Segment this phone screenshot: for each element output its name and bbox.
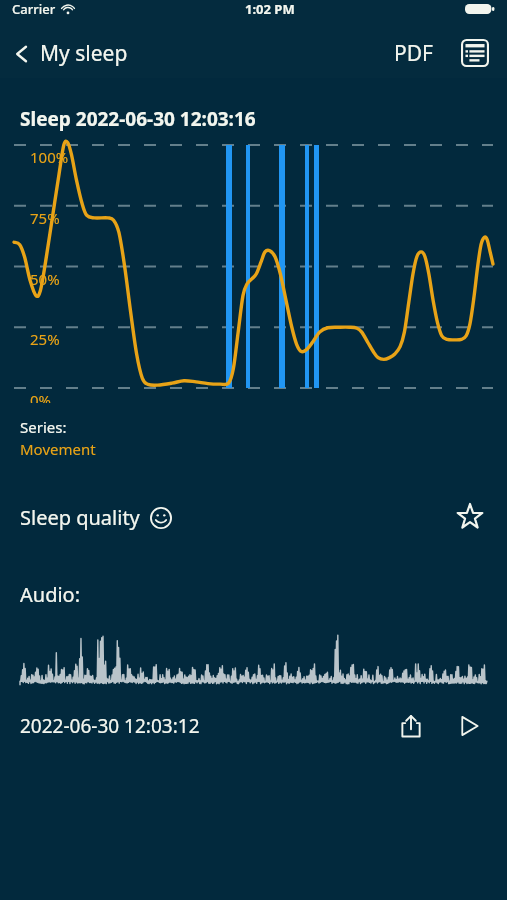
staticText: My sleep [40, 39, 128, 68]
staticText: 50% [30, 269, 60, 289]
staticText: 75% [30, 208, 60, 228]
button[interactable]: Play [451, 708, 487, 744]
button[interactable]: PDF [384, 31, 443, 76]
button[interactable]: Share [393, 708, 429, 744]
staticText: 100% [30, 147, 69, 167]
staticText: 1:02 PM [245, 0, 295, 18]
staticText: 25% [30, 329, 60, 349]
button[interactable]: Sleep quality [20, 504, 172, 531]
staticText: Sleep quality [20, 504, 140, 531]
staticText: 2022-06-30 12:03:12 [20, 713, 200, 739]
button[interactable]: My sleep [0, 33, 136, 74]
staticText: 0% [30, 390, 52, 403]
staticText: Series: [20, 417, 67, 437]
staticText: Carrier [12, 0, 56, 18]
staticText: Sleep 2022-06-30 12:03:16 [20, 106, 256, 132]
button[interactable]: Notes [457, 31, 507, 75]
button[interactable]: Favorite [453, 500, 487, 534]
staticText: Audio: [20, 581, 81, 608]
staticText: Movement [20, 439, 96, 459]
staticText: PDF [394, 39, 433, 68]
